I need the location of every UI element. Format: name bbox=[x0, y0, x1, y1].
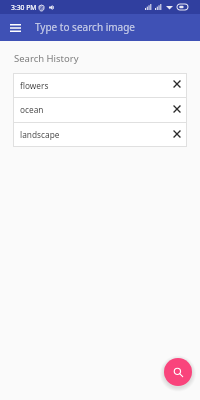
button[interactable]: flowers bbox=[13, 73, 187, 97]
button[interactable]: Search bbox=[164, 358, 192, 386]
button[interactable]: Open navigation menu bbox=[3, 16, 27, 40]
staticText: Search History bbox=[14, 52, 79, 65]
button[interactable]: Remove flowers bbox=[166, 74, 187, 94]
staticText: 3:30 PM bbox=[11, 3, 37, 12]
staticText: Type to search image bbox=[35, 20, 135, 34]
button[interactable]: Type to search image bbox=[31, 18, 194, 38]
button[interactable]: landscape bbox=[13, 122, 187, 147]
staticText: flowers bbox=[20, 80, 165, 91]
staticText: landscape bbox=[20, 129, 165, 140]
button[interactable]: ocean bbox=[13, 97, 187, 122]
button[interactable]: Remove ocean bbox=[166, 99, 187, 119]
staticText: ocean bbox=[20, 104, 165, 115]
button[interactable]: Remove landscape bbox=[166, 124, 187, 144]
